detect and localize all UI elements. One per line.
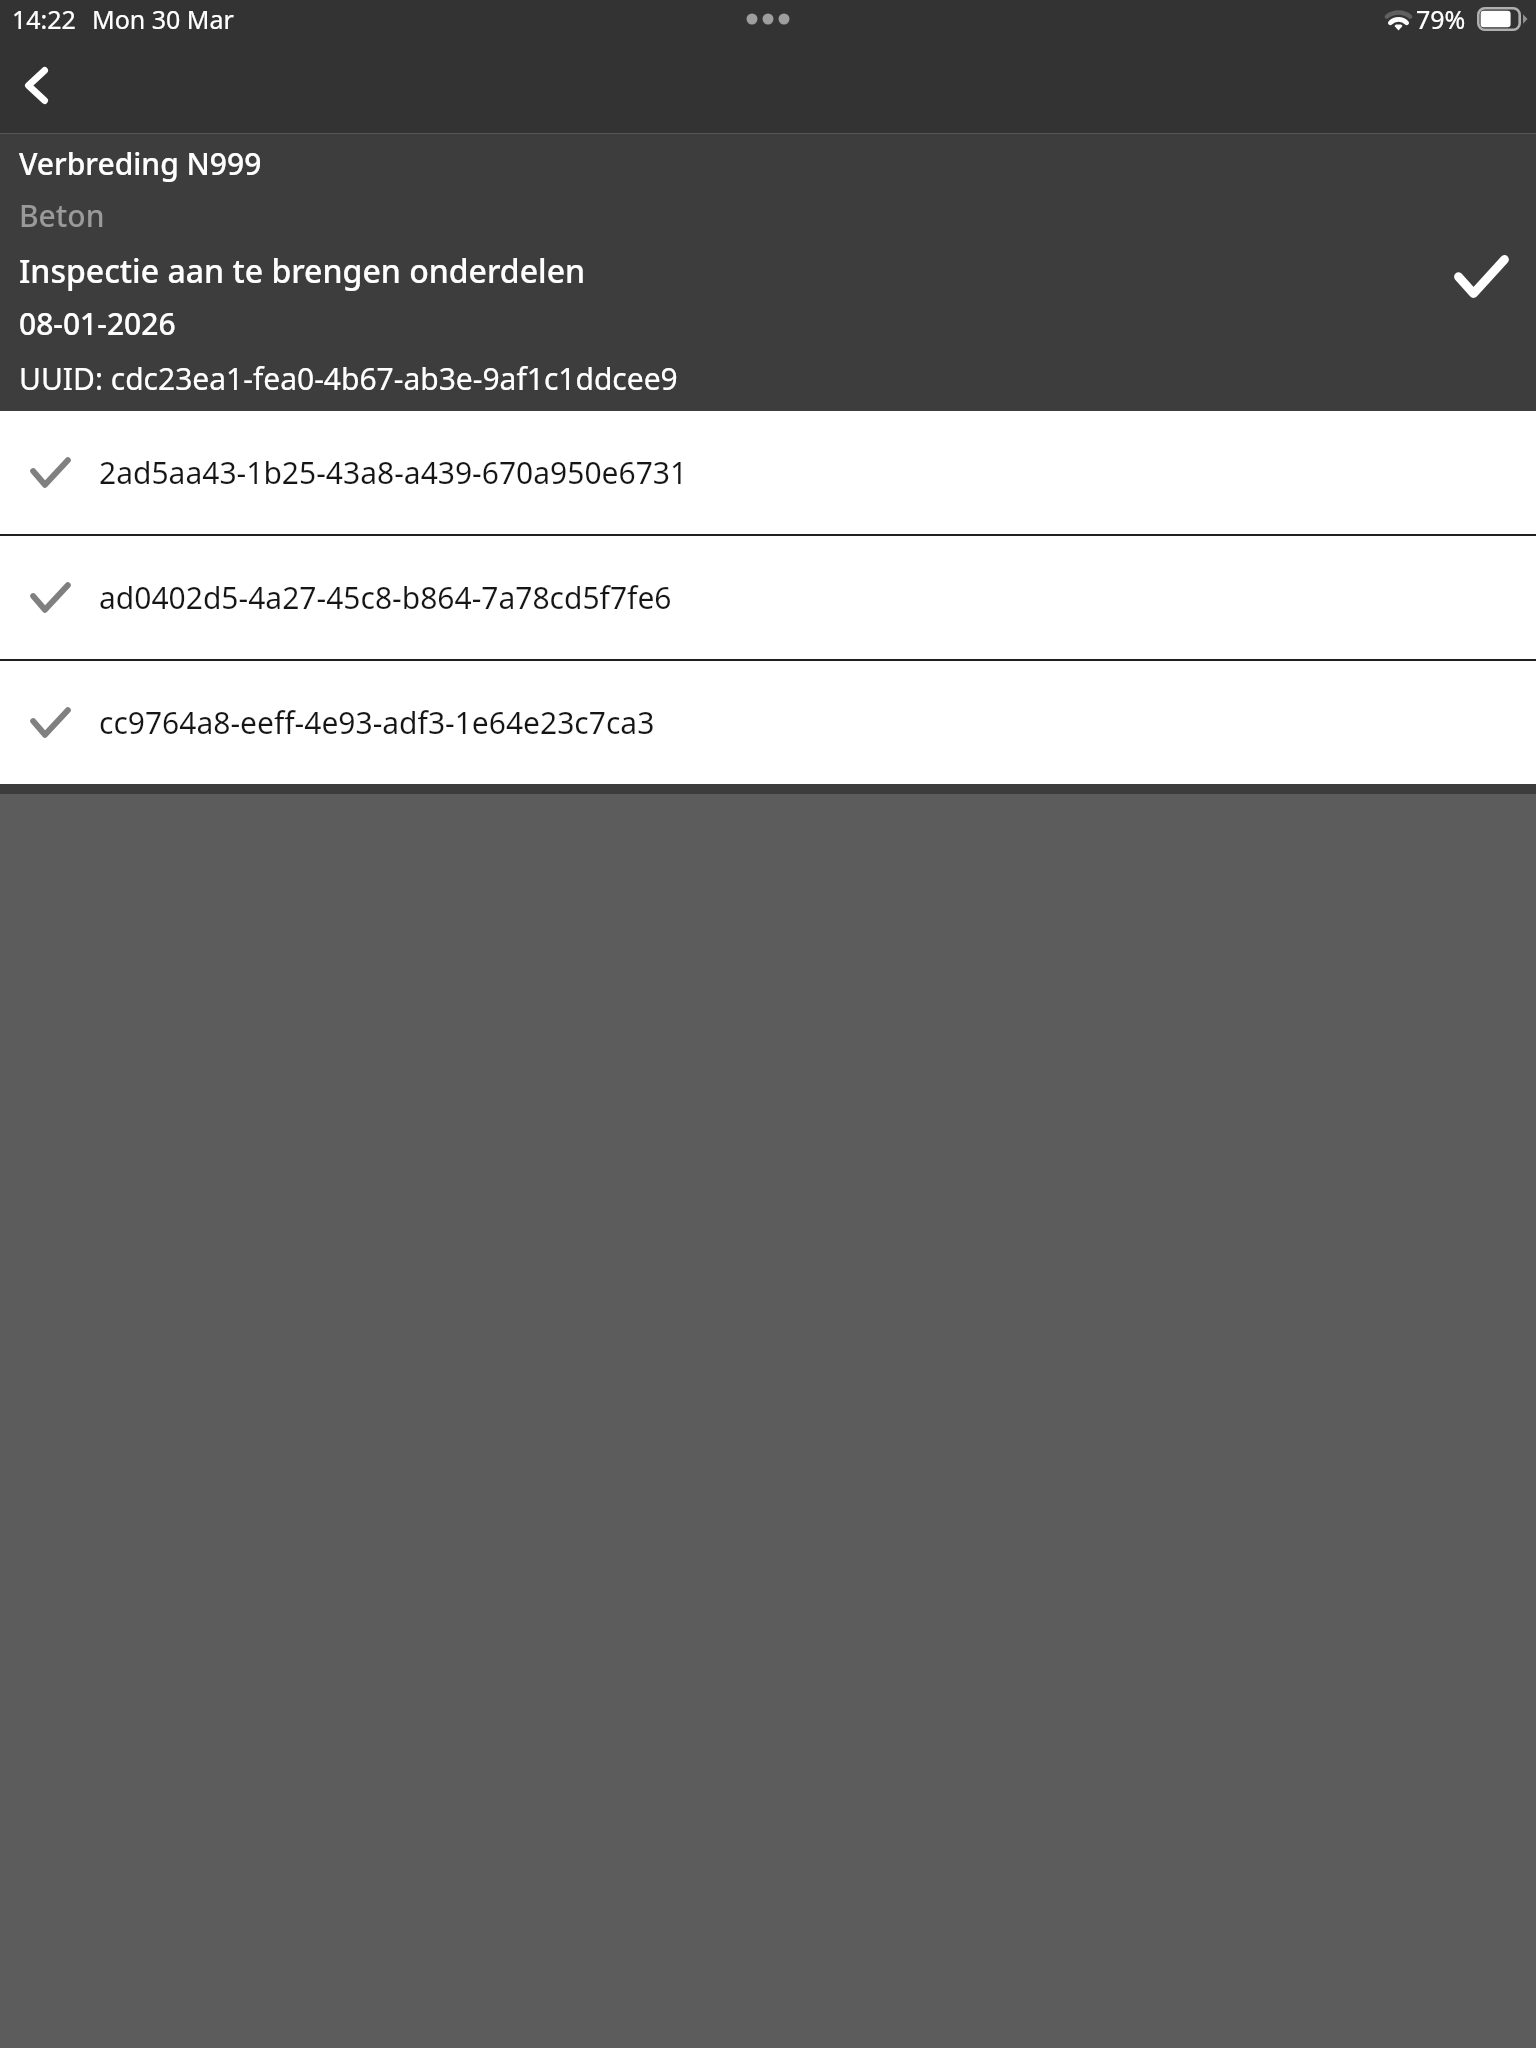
button[interactable]: Back bbox=[0, 47, 72, 123]
staticText: Verbreding N999 bbox=[19, 143, 262, 184]
button[interactable]: Confirm bbox=[1426, 231, 1536, 321]
staticText: 79% bbox=[1416, 2, 1466, 36]
button[interactable]: 2ad5aa43-1b25-43a8-a439-670a950e6731 bbox=[0, 411, 1536, 534]
staticText: 2ad5aa43-1b25-43a8-a439-670a950e6731 bbox=[99, 452, 688, 493]
staticText: Mon 30 Mar bbox=[92, 2, 234, 36]
staticText: cc9764a8-eeff-4e93-adf3-1e64e23c7ca3 bbox=[99, 702, 655, 743]
button[interactable]: cc9764a8-eeff-4e93-adf3-1e64e23c7ca3 bbox=[0, 661, 1536, 784]
staticText: Inspectie aan te brengen onderdelen bbox=[19, 249, 586, 293]
staticText: 14:22 bbox=[12, 2, 76, 36]
button[interactable]: ad0402d5-4a27-45c8-b864-7a78cd5f7fe6 bbox=[0, 536, 1536, 659]
staticText: UUID: cdc23ea1-fea0-4b67-ab3e-9af1c1ddce… bbox=[19, 358, 678, 399]
staticText: Beton bbox=[19, 195, 105, 236]
staticText: 08-01-2026 bbox=[19, 303, 176, 344]
staticText: ad0402d5-4a27-45c8-b864-7a78cd5f7fe6 bbox=[99, 577, 672, 618]
